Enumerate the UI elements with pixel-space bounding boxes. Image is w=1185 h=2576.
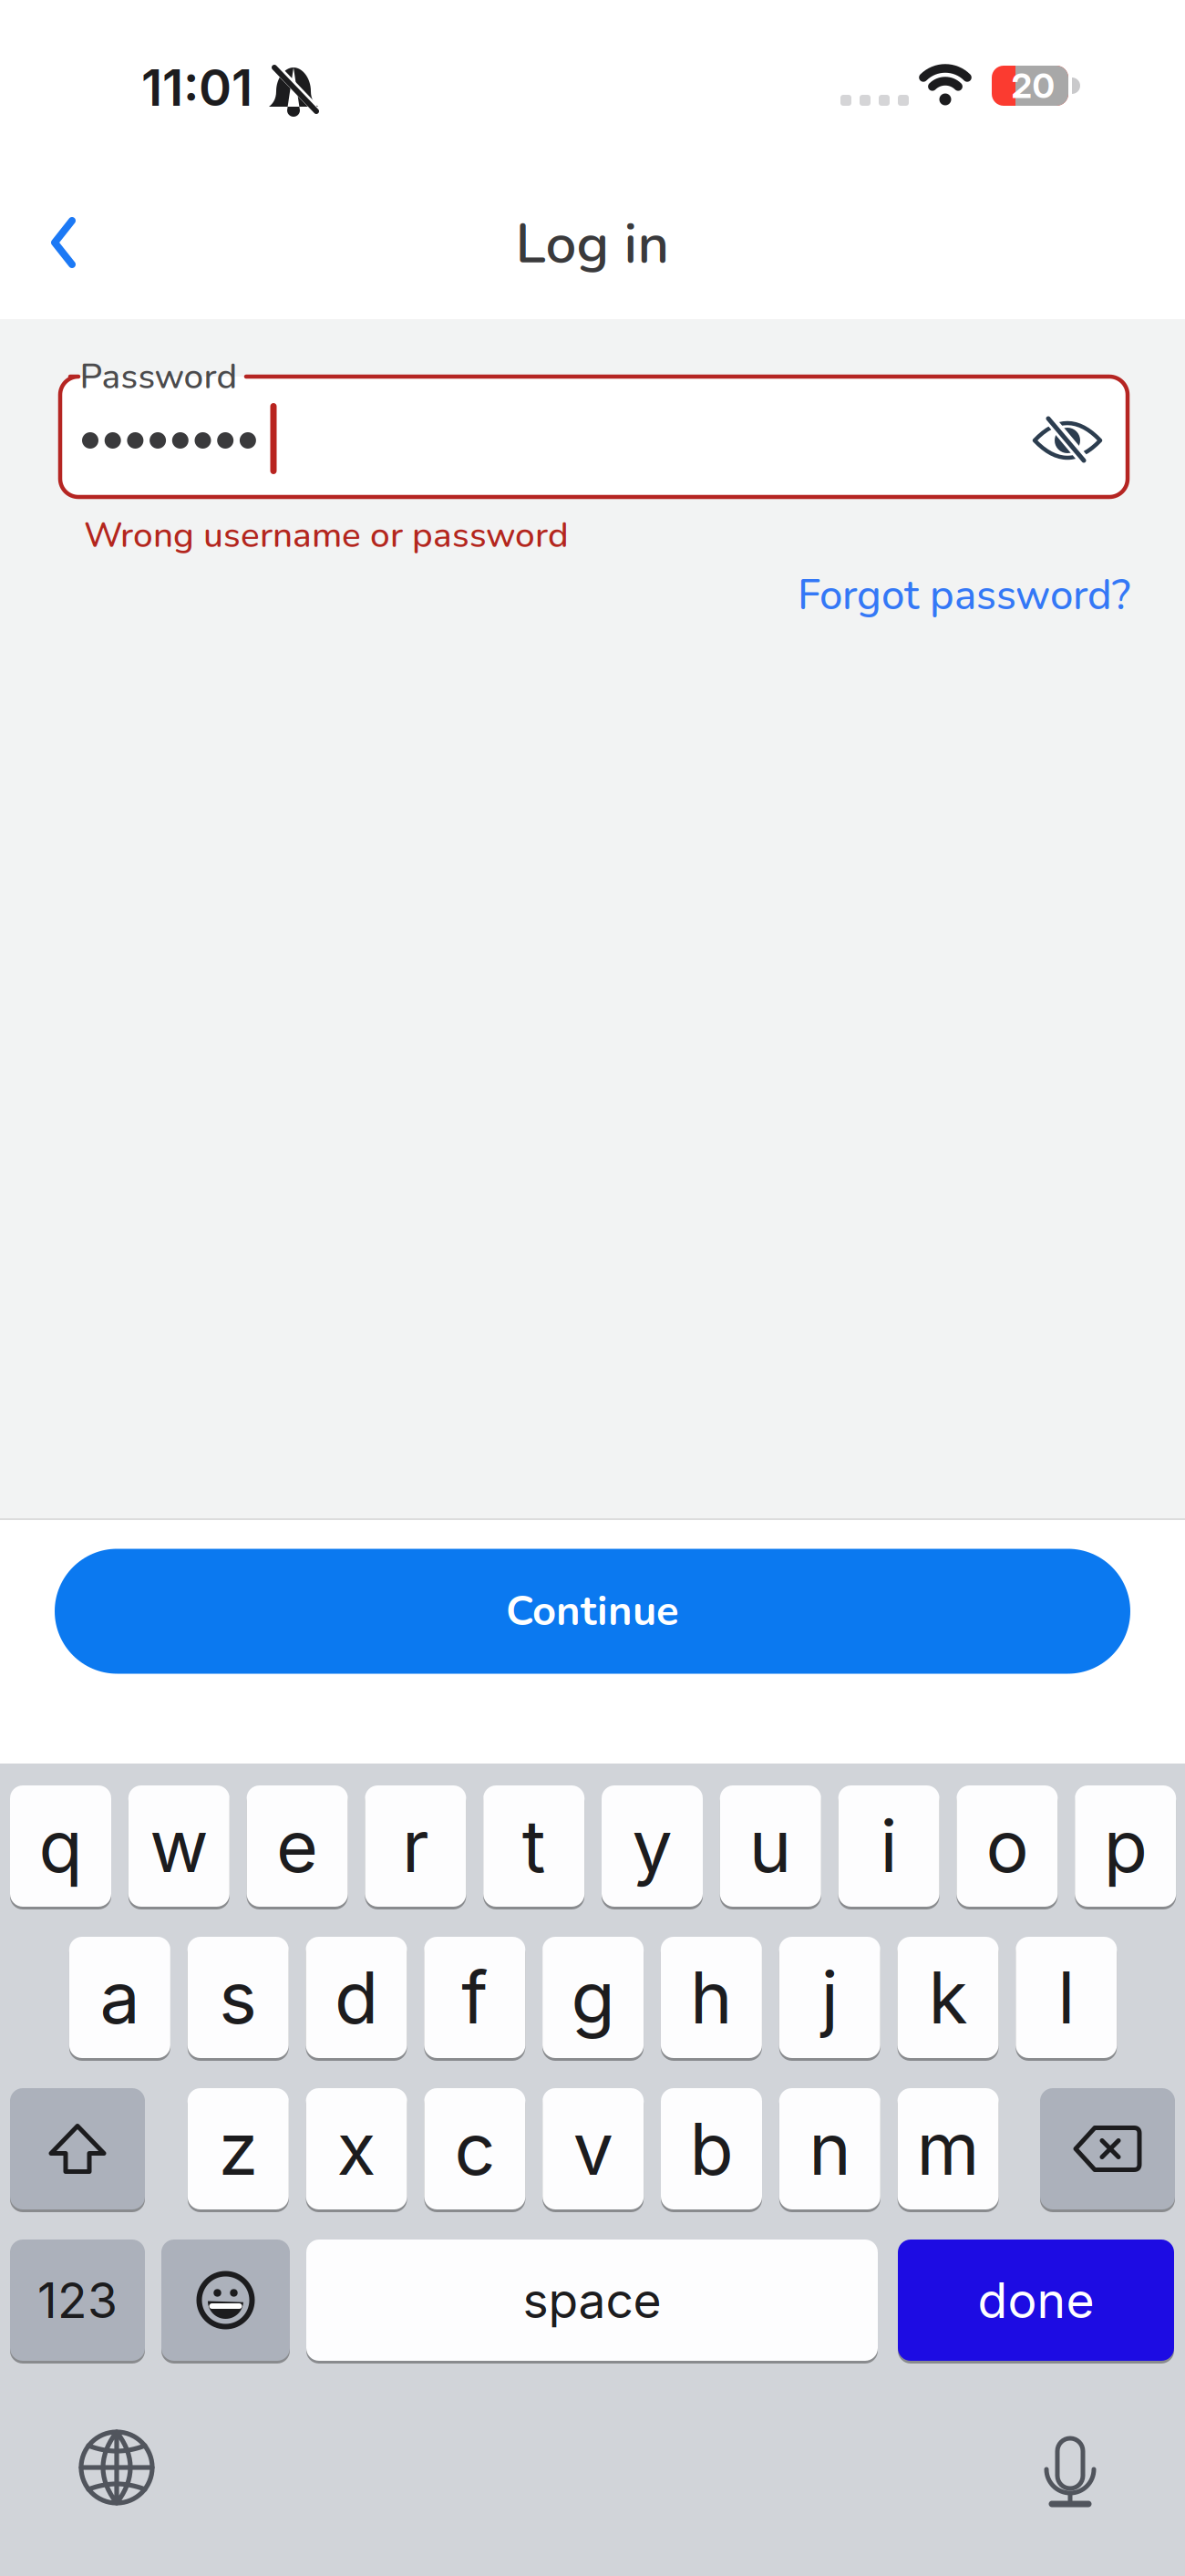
button[interactable]: Emoji	[161, 2240, 290, 2361]
button[interactable]: h	[661, 1937, 762, 2058]
button[interactable]: c	[424, 2088, 525, 2209]
button[interactable]: e	[247, 1785, 348, 1907]
staticText: k	[928, 1954, 968, 2041]
button[interactable]: Forgot password?	[798, 567, 1130, 624]
staticText: b	[690, 2105, 733, 2192]
button[interactable]: m	[898, 2088, 999, 2209]
button[interactable]: w	[128, 1785, 230, 1907]
button[interactable]: q	[10, 1785, 111, 1907]
staticText: f	[462, 1954, 488, 2041]
staticText: n	[809, 2105, 851, 2192]
staticText: s	[219, 1954, 257, 2041]
button[interactable]: j	[779, 1937, 880, 2058]
button[interactable]: i	[838, 1785, 939, 1907]
button[interactable]: n	[779, 2088, 880, 2209]
button[interactable]: b	[661, 2088, 762, 2209]
button[interactable]: done	[898, 2240, 1174, 2361]
button[interactable]: y	[602, 1785, 703, 1907]
button[interactable]: Back	[50, 216, 77, 269]
staticText: e	[276, 1803, 318, 1889]
staticText: 11:01	[141, 57, 252, 118]
staticText: Log in	[515, 207, 670, 282]
staticText: j	[821, 1954, 838, 2041]
button[interactable]: z	[188, 2088, 289, 2209]
button[interactable]: r	[365, 1785, 466, 1907]
button[interactable]: o	[957, 1785, 1058, 1907]
staticText: m	[917, 2105, 980, 2192]
button[interactable]: Continue	[55, 1549, 1130, 1674]
button[interactable]: g	[542, 1937, 644, 2058]
button[interactable]: f	[424, 1937, 525, 2058]
staticText: d	[335, 1954, 378, 2041]
staticText: a	[100, 1954, 140, 2041]
button[interactable]: v	[543, 2088, 644, 2209]
staticText: g	[571, 1954, 615, 2041]
staticText: o	[986, 1803, 1029, 1889]
staticText: done	[978, 2271, 1094, 2330]
button[interactable]: t	[483, 1785, 584, 1907]
staticText: u	[749, 1803, 792, 1889]
button[interactable]: Delete	[1040, 2088, 1175, 2209]
staticText: 123	[37, 2271, 118, 2330]
staticText: q	[39, 1803, 82, 1889]
staticText: y	[632, 1803, 672, 1889]
staticText: Password	[80, 353, 237, 401]
staticText: i	[880, 1803, 898, 1889]
staticText: p	[1104, 1803, 1147, 1889]
button[interactable]: l	[1016, 1937, 1117, 2058]
button[interactable]: k	[897, 1937, 999, 2058]
button[interactable]: p	[1075, 1785, 1176, 1907]
button[interactable]: space	[306, 2240, 878, 2361]
staticText: z	[219, 2105, 258, 2192]
staticText: v	[573, 2105, 613, 2192]
staticText: c	[454, 2105, 495, 2192]
button[interactable]: Next keyboard	[76, 2426, 158, 2509]
button[interactable]: d	[306, 1937, 407, 2058]
button[interactable]: Shift	[10, 2088, 145, 2209]
staticText: Forgot password?	[798, 567, 1130, 624]
button[interactable]: Show password	[1026, 399, 1108, 481]
button[interactable]: u	[720, 1785, 821, 1907]
button[interactable]: s	[188, 1937, 289, 2058]
staticText: t	[522, 1803, 546, 1889]
staticText: h	[690, 1954, 733, 2041]
staticText: w	[150, 1803, 208, 1889]
staticText: x	[337, 2105, 376, 2192]
button[interactable]: Dictate	[1029, 2418, 1111, 2509]
staticText: l	[1058, 1954, 1075, 2041]
staticText: space	[523, 2271, 661, 2330]
staticText: r	[402, 1803, 429, 1889]
staticText: 20	[1011, 65, 1054, 106]
button[interactable]: a	[69, 1937, 170, 2058]
staticText: Wrong username or password	[84, 511, 569, 559]
button[interactable]: x	[306, 2088, 407, 2209]
button[interactable]: Numbers	[10, 2240, 145, 2361]
staticText: Continue	[506, 1583, 679, 1639]
